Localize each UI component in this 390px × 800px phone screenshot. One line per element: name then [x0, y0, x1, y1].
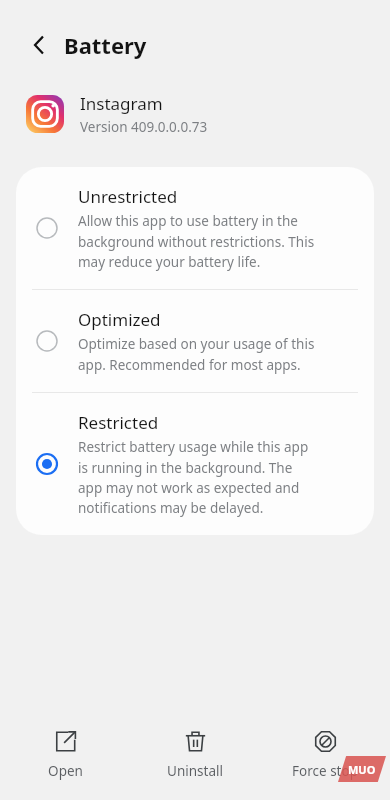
- staticText: Version 409.0.0.0.73: [80, 118, 208, 136]
- staticText: Uninstall: [167, 762, 223, 780]
- staticText: Force stop: [292, 762, 358, 780]
- staticText: Restricted: [78, 411, 159, 434]
- staticText: Battery: [64, 30, 147, 60]
- staticText: Optimized: [78, 308, 161, 331]
- staticText: MUO: [348, 762, 376, 777]
- staticText: Allow this app to use battery in the bac…: [78, 212, 315, 271]
- staticText: Restrict battery usage while this app is…: [78, 438, 309, 517]
- other: Open: [54, 730, 77, 753]
- staticText: Instagram: [80, 92, 163, 115]
- button[interactable]: Force stop: [260, 724, 390, 786]
- button[interactable]: Back: [20, 26, 58, 64]
- staticText: Optimize based on your usage of this app…: [78, 335, 315, 374]
- button[interactable]: Optimized: [16, 290, 374, 392]
- staticText: Open: [48, 762, 83, 780]
- other: Uninstall: [184, 730, 207, 753]
- button[interactable]: Uninstall: [130, 724, 260, 786]
- button[interactable]: Unrestricted: [16, 167, 374, 289]
- staticText: Unrestricted: [78, 185, 178, 208]
- other: Force stop: [314, 730, 337, 753]
- button[interactable]: Restricted: [16, 393, 374, 535]
- button[interactable]: Open: [0, 724, 130, 786]
